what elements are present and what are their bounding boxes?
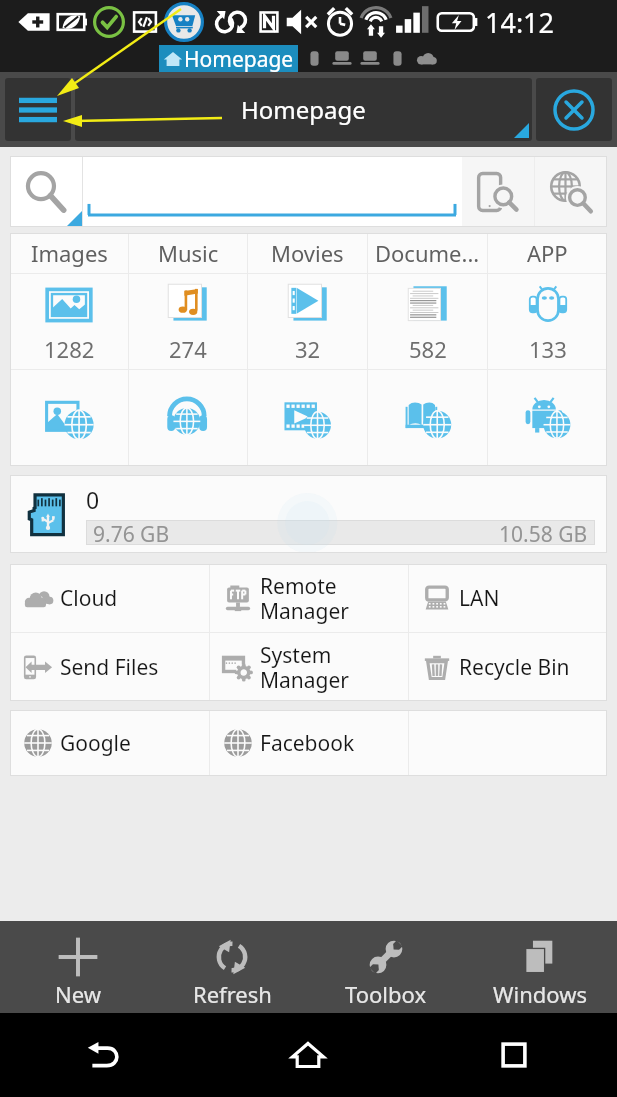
staticText: Google xyxy=(60,729,131,758)
staticText: Music xyxy=(158,238,219,268)
staticText: Facebook xyxy=(260,729,355,758)
button[interactable]: Homepage xyxy=(75,78,532,141)
button[interactable]: Network Images xyxy=(10,370,128,466)
button[interactable]: 582 xyxy=(368,274,487,369)
staticText: Images xyxy=(31,238,108,268)
button[interactable]: Open navigation menu xyxy=(5,78,71,141)
button[interactable]: Back xyxy=(0,1013,205,1097)
button[interactable]: 274 xyxy=(129,274,247,369)
button[interactable]: Windows xyxy=(463,921,617,1013)
staticText: 0 xyxy=(86,484,100,515)
button[interactable]: Recent apps xyxy=(411,1013,617,1097)
button[interactable]: Refresh xyxy=(155,921,309,1013)
staticText: APP xyxy=(527,238,568,268)
button[interactable]: Search the web xyxy=(535,156,607,227)
staticText: 14:12 xyxy=(485,4,555,41)
staticText: Refresh xyxy=(193,979,272,1009)
button[interactable]: Close xyxy=(536,78,612,141)
button[interactable]: System Manager xyxy=(210,633,408,701)
button[interactable]: Network Docume... xyxy=(368,370,487,466)
button[interactable]: LAN xyxy=(409,564,607,632)
staticText: Cloud xyxy=(60,584,118,613)
button[interactable]: Search xyxy=(10,156,82,227)
staticText: Movies xyxy=(271,238,344,268)
staticText: New xyxy=(55,979,101,1009)
staticText: 9.76 GB xyxy=(93,520,170,545)
staticText: 32 xyxy=(295,334,321,364)
button[interactable]: 1282 xyxy=(10,274,128,369)
staticText: 582 xyxy=(409,334,447,364)
button[interactable]: Home xyxy=(205,1013,411,1097)
staticText: Windows xyxy=(493,979,587,1009)
staticText: Toolbox xyxy=(345,979,427,1009)
staticText: Send Files xyxy=(60,653,159,682)
button[interactable]: New xyxy=(0,921,155,1013)
staticText: 133 xyxy=(529,334,567,364)
staticText: 10.58 GB xyxy=(499,520,588,545)
staticText: Docume... xyxy=(375,238,480,268)
button[interactable]: 0 xyxy=(10,475,607,553)
staticText: System Manager xyxy=(260,641,350,694)
button[interactable]: Google xyxy=(10,710,209,776)
button[interactable]: Remote Manager xyxy=(210,564,408,632)
button[interactable]: 32 xyxy=(248,274,367,369)
button[interactable] xyxy=(83,156,462,227)
staticText: 1282 xyxy=(44,334,95,364)
button[interactable]: Network Movies xyxy=(248,370,367,466)
staticText: Recycle Bin xyxy=(459,653,570,682)
button[interactable]: Search this device xyxy=(462,156,534,227)
button[interactable]: Send Files xyxy=(10,633,209,701)
button[interactable]: Toolbox xyxy=(309,921,463,1013)
button[interactable]: Network Music xyxy=(129,370,247,466)
staticText: LAN xyxy=(459,584,500,613)
staticText: 274 xyxy=(169,334,207,364)
button[interactable]: Facebook xyxy=(210,710,408,776)
staticText: Homepage xyxy=(184,45,294,72)
button[interactable]: Network APP xyxy=(488,370,607,466)
staticText: Remote Manager xyxy=(260,572,350,625)
button[interactable]: 133 xyxy=(488,274,607,369)
button[interactable]: Recycle Bin xyxy=(409,633,607,701)
staticText: Homepage xyxy=(241,93,366,126)
button[interactable]: Cloud xyxy=(10,564,209,632)
